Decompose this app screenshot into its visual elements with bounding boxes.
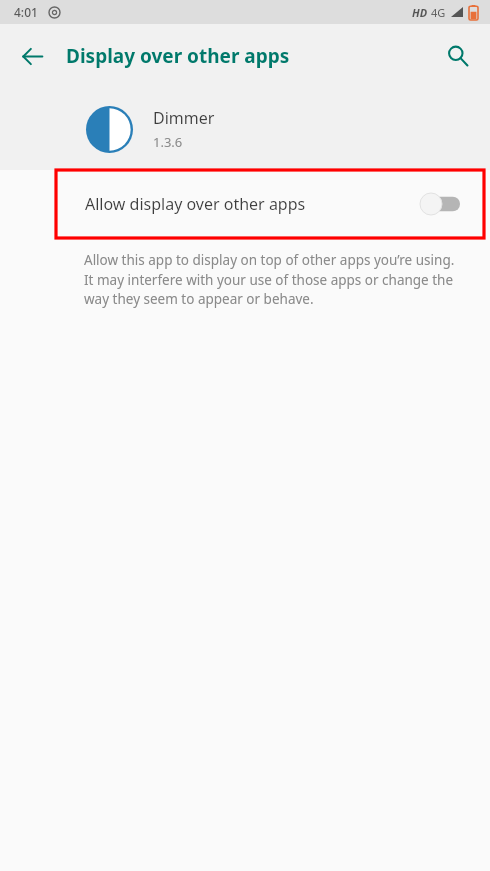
button[interactable]: Navigate up xyxy=(8,32,56,80)
staticText: 1.3.6 xyxy=(153,133,183,151)
staticText: Dimmer xyxy=(153,107,215,129)
button[interactable]: Allow display over other apps xyxy=(56,170,484,238)
staticText: Allow display over other apps xyxy=(85,193,306,215)
staticText: Allow this app to display on top of othe… xyxy=(84,251,460,308)
staticText: HD xyxy=(412,5,428,20)
staticText: 4G xyxy=(431,5,446,20)
staticText: Display over other apps xyxy=(66,43,290,69)
button[interactable]: Search xyxy=(434,32,482,80)
staticText: 4:01 xyxy=(14,4,38,20)
